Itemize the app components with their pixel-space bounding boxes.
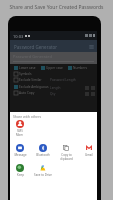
- staticText: Auto Copy: [19, 91, 35, 95]
- staticText: 10:03: [13, 34, 24, 39]
- staticText: Keep: [17, 173, 24, 177]
- button[interactable]: Exclude Similar: [14, 78, 42, 82]
- staticText: Gmail: [85, 153, 93, 157]
- staticText: Exclude Ambiguous: [19, 85, 49, 89]
- staticText: Qty: [50, 92, 56, 96]
- staticText: Message: [14, 153, 27, 157]
- button[interactable]: Upper case: [41, 66, 63, 70]
- button[interactable]: Copy to clipboard: [55, 144, 77, 160]
- staticText: Length: [50, 86, 61, 90]
- staticText: Share and Save Your Created Passwords: [0, 4, 113, 11]
- staticText: Password Length: [50, 78, 76, 82]
- staticText: Share with others: [13, 114, 42, 119]
- staticText: Bluetooth: [36, 153, 50, 157]
- button[interactable]: Gmail: [78, 144, 100, 157]
- button[interactable]: Lower case: [14, 66, 36, 70]
- button[interactable]: SMS: [11, 120, 29, 137]
- button[interactable]: Bluetooth: [32, 144, 54, 157]
- staticText: Symbols: [19, 72, 32, 76]
- staticText: Mom: [16, 133, 24, 137]
- staticText: Exclude Similar: [19, 78, 42, 82]
- button[interactable]: Numbers: [68, 66, 87, 70]
- staticText: Lower case: [19, 66, 36, 70]
- staticText: SMS: [17, 129, 23, 133]
- staticText: Numbers: [73, 66, 87, 70]
- button[interactable]: Symbols: [14, 72, 32, 76]
- button[interactable]: Message: [9, 144, 31, 157]
- staticText: Copy to clipboard: [60, 153, 73, 160]
- staticText: Password Generated: [13, 54, 53, 59]
- button[interactable]: Auto Copy: [14, 91, 35, 95]
- staticText: Save to Drive: [34, 173, 52, 177]
- button[interactable]: Save to Drive: [32, 164, 54, 177]
- button[interactable]: Menu: [88, 43, 95, 50]
- staticText: Upper case: [46, 66, 63, 70]
- staticText: Password Generator: [14, 44, 58, 50]
- button[interactable]: Keep: [9, 164, 31, 177]
- button[interactable]: Exclude Ambiguous: [14, 85, 49, 89]
